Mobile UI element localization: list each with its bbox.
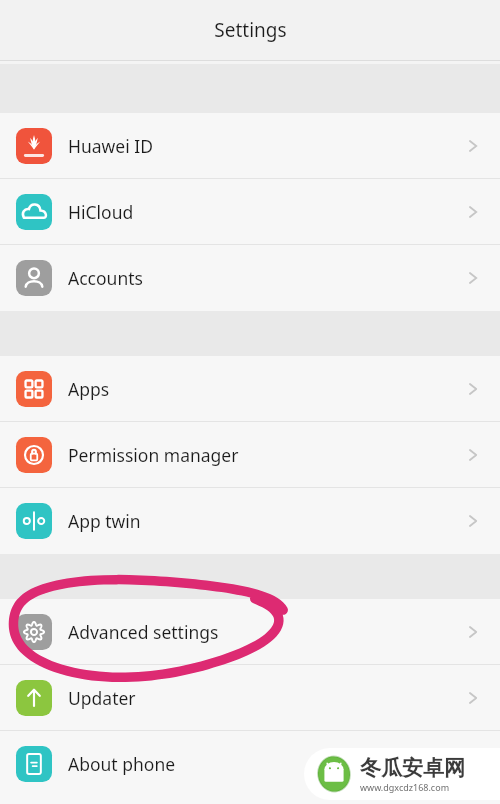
staticText: Apps [68,377,110,401]
staticText: About phone [68,752,176,776]
staticText: www.dgxcdz168.com [360,781,450,793]
staticText: Updater [68,686,136,710]
staticText: Accounts [68,266,143,290]
button[interactable]: Accounts [0,245,500,311]
staticText: App twin [68,509,141,533]
staticText: Settings [214,17,287,43]
button[interactable]: App twin [0,488,500,554]
staticText: 冬瓜安卓网 [360,755,465,781]
staticText: HiCloud [68,200,134,224]
staticText: Advanced settings [68,620,219,644]
staticText: Huawei ID [68,134,153,158]
button[interactable]: Updater [0,665,500,730]
staticText: Permission manager [68,443,239,467]
button[interactable]: HiCloud [0,179,500,244]
button[interactable]: Apps [0,356,500,421]
button[interactable]: Huawei ID [0,113,500,178]
button[interactable]: About phone [0,731,500,797]
button[interactable]: Permission manager [0,422,500,487]
button[interactable]: Advanced settings [0,599,500,664]
